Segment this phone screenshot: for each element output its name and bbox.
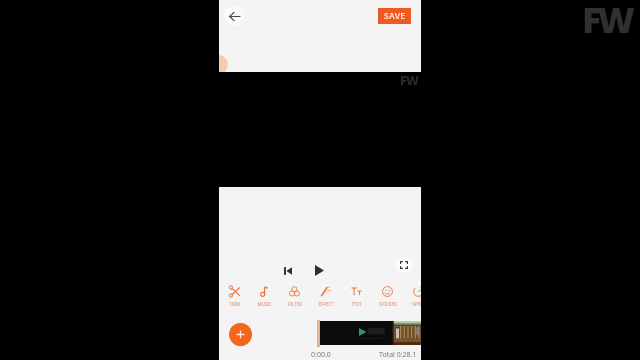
staticText: FW <box>582 0 631 44</box>
staticText: TEXT <box>351 301 362 307</box>
button[interactable]: SAVE <box>378 8 411 24</box>
button[interactable]: TEXT <box>341 286 372 307</box>
button[interactable]: STICKER <box>372 286 403 307</box>
button[interactable]: Play <box>311 262 328 279</box>
staticText: FILTER <box>288 301 302 307</box>
staticText: MUSIC <box>257 301 272 307</box>
staticText: 0:00.0 <box>311 350 331 360</box>
button[interactable]: FILTER <box>279 286 310 307</box>
button[interactable]: EFFECT <box>310 286 341 307</box>
staticText: EFFECT <box>318 301 334 307</box>
button[interactable]: Previous <box>280 263 296 279</box>
staticText: FW <box>400 72 419 89</box>
staticText: SPEED <box>412 301 421 307</box>
button[interactable]: MUSIC <box>249 286 279 307</box>
button[interactable]: Fullscreen <box>396 257 412 273</box>
staticText: Total 0:28.1 <box>379 350 417 360</box>
button[interactable]: SPEED <box>403 286 421 307</box>
button[interactable]: TRIM <box>219 286 249 307</box>
staticText: TRIM <box>229 301 240 307</box>
button[interactable]: Add clip <box>229 323 252 346</box>
button[interactable]: Back <box>224 6 244 26</box>
staticText: SAVE <box>384 10 406 22</box>
staticText: STICKER <box>379 301 397 307</box>
